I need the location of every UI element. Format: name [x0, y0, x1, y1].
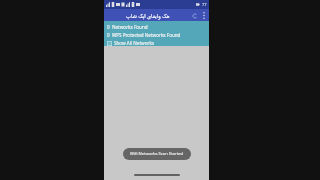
button[interactable]: Show All Networks: [107, 40, 209, 46]
button[interactable]: 0 WPS Protected Networks Found: [107, 32, 209, 38]
button[interactable]: Refresh: [189, 10, 200, 21]
staticText: 0 Networks Found: [107, 24, 148, 30]
staticText: 77: [202, 2, 207, 7]
staticText: Wifi Networks Scan Started: [130, 151, 184, 157]
button[interactable]: 0 Networks Found: [107, 24, 209, 30]
button[interactable]: More options: [200, 10, 208, 21]
staticText: Show All Networks: [114, 40, 155, 46]
staticText: 0 WPS Protected Networks Found: [107, 32, 181, 38]
button[interactable]: Wifi Networks Scan Started: [123, 148, 191, 160]
staticText: هک وایفای اپک شاپ: [126, 12, 170, 19]
